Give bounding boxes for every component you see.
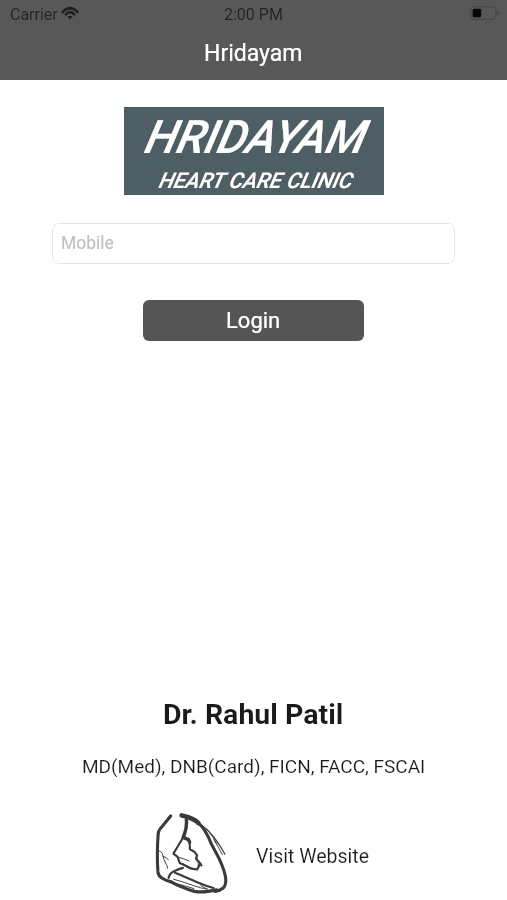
staticText: MD(Med), DNB(Card), FICN, FACC, FSCAI [82, 755, 426, 777]
staticText: HEART CARE CLINIC [158, 168, 352, 193]
button[interactable]: Visit Website [256, 845, 370, 868]
staticText: Login [226, 308, 281, 334]
button[interactable]: Visit Website [152, 812, 238, 898]
button[interactable]: Login [143, 300, 364, 341]
staticText: HRIDAYAM [143, 110, 363, 164]
other: Battery [470, 6, 500, 20]
staticText: Carrier [10, 5, 58, 24]
staticText: Dr. Rahul Patil [163, 698, 344, 731]
staticText: 2:00 PM [224, 5, 283, 24]
staticText: Hridayam [204, 40, 303, 67]
staticText: Mobile [61, 233, 114, 254]
other: Wi-Fi [61, 5, 79, 19]
button[interactable]: Mobile [52, 223, 455, 264]
